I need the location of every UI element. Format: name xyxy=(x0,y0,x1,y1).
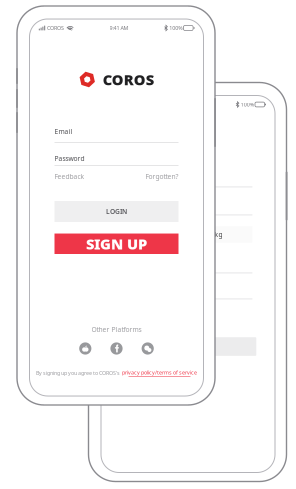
staticText: Forgotten? xyxy=(145,172,178,181)
button[interactable]: Feedback xyxy=(54,172,94,180)
staticText: LOGIN xyxy=(106,207,127,216)
staticText: kg xyxy=(214,230,222,239)
button[interactable]: Continue with Apple xyxy=(79,342,91,355)
staticText: COROS xyxy=(47,24,64,32)
staticText: Email xyxy=(54,127,72,136)
staticText: 100% xyxy=(241,101,254,108)
button[interactable]: privacy policy/terms of service xyxy=(122,369,197,377)
staticText: COROS xyxy=(103,70,154,89)
staticText: 100% xyxy=(169,24,182,32)
staticText: Password xyxy=(54,154,84,163)
staticText: By signing up you agree to COROS's xyxy=(36,369,120,377)
staticText: Other Platforms xyxy=(91,325,141,334)
button[interactable]: Continue with Facebook xyxy=(110,342,123,355)
button[interactable]: Continue with WeChat xyxy=(142,342,154,355)
button[interactable]: Forgotten? xyxy=(138,172,178,180)
staticText: Feedback xyxy=(54,172,84,181)
staticText: SIGN UP xyxy=(86,234,147,253)
staticText: 9:41 AM xyxy=(109,24,128,32)
staticText: privacy policy/terms of service xyxy=(122,369,197,376)
button[interactable]: SIGN UP xyxy=(54,233,178,254)
button[interactable]: LOGIN xyxy=(54,201,178,222)
